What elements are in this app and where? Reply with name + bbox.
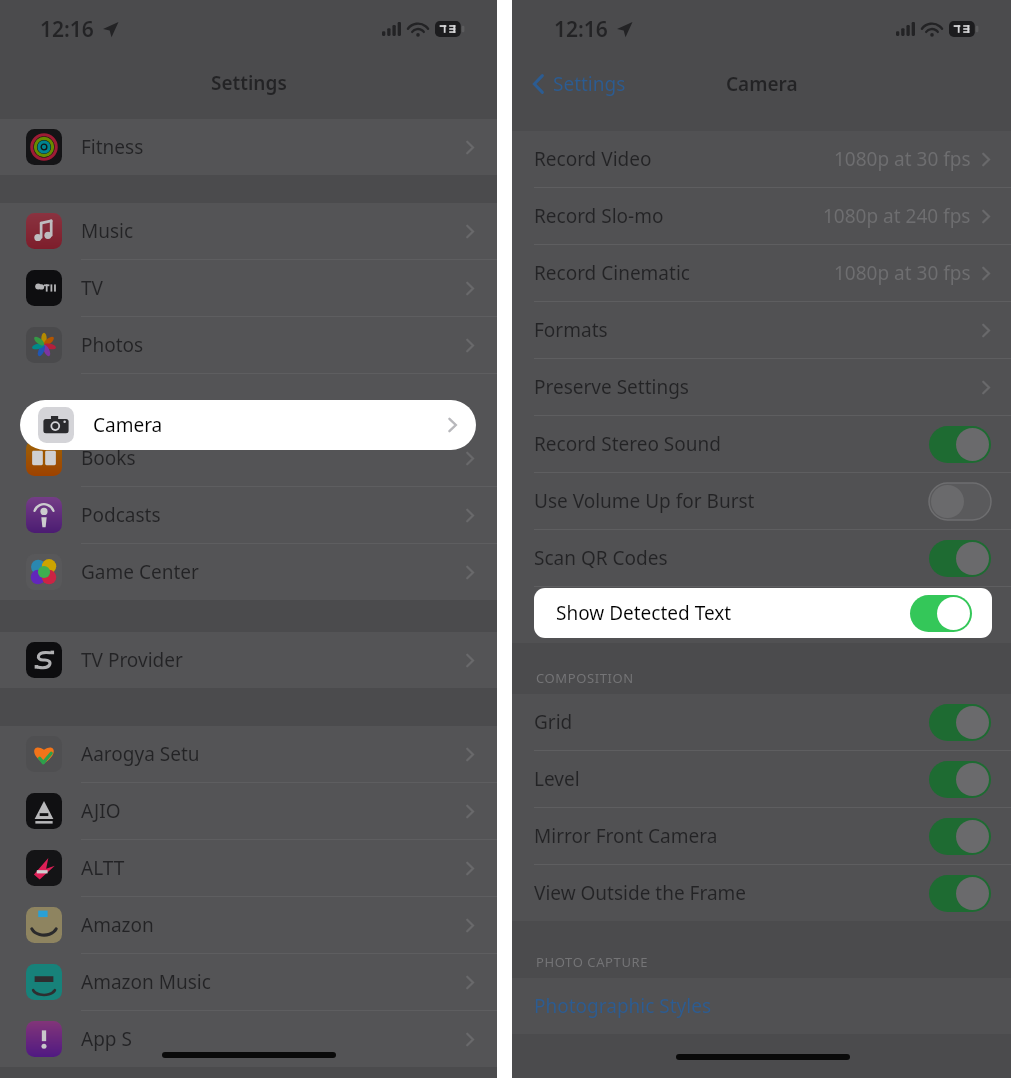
button[interactable]: ALTT <box>0 840 497 897</box>
button[interactable]: Books <box>0 430 497 487</box>
button[interactable]: View Outside the Frame <box>512 865 1011 921</box>
button[interactable]: Grid <box>512 694 1011 751</box>
button[interactable]: Aarogya Setu <box>0 726 497 783</box>
button[interactable]: Scan QR Codes <box>512 530 1011 587</box>
staticText: Aarogya Setu <box>81 741 200 767</box>
staticText: 1080p at 240 fps <box>823 203 971 229</box>
staticText: Scan QR Codes <box>534 545 668 571</box>
staticText: Record Video <box>534 146 652 172</box>
button[interactable]: Show Detected Text <box>534 588 992 638</box>
button[interactable]: Record Stereo Sound <box>512 416 1011 473</box>
other: Record Stereo Sound toggle <box>929 426 991 463</box>
button[interactable]: Camera <box>20 400 476 450</box>
staticText: Formats <box>534 317 608 343</box>
staticText: ALTT <box>81 855 125 881</box>
button[interactable]: Formats <box>512 302 1011 359</box>
button[interactable]: Record Cinematic <box>512 245 1011 302</box>
staticText: Record Cinematic <box>534 260 690 286</box>
other: Use Volume Up for Burst toggle <box>929 483 991 520</box>
staticText: Settings <box>553 71 626 97</box>
other: Level toggle <box>929 761 991 798</box>
staticText: App S <box>81 1026 132 1052</box>
staticText: Use Volume Up for Burst <box>534 488 755 514</box>
staticText: Books <box>81 445 136 471</box>
staticText: Preserve Settings <box>534 374 689 400</box>
staticText: 12:16 <box>554 15 608 44</box>
button[interactable]: TV Provider <box>0 632 497 688</box>
staticText: Settings <box>211 70 287 96</box>
staticText: TV <box>81 275 103 301</box>
staticText: Record Stereo Sound <box>534 431 721 457</box>
button[interactable]: Mirror Front Camera <box>512 808 1011 865</box>
staticText: Mirror Front Camera <box>534 823 718 849</box>
staticText: Game Center <box>81 559 199 585</box>
staticText: Level <box>534 766 580 792</box>
other: View Outside the Frame toggle <box>929 875 991 912</box>
staticText: PHOTO CAPTURE <box>536 953 648 971</box>
staticText: Camera <box>93 412 163 438</box>
staticText: COMPOSITION <box>536 669 634 687</box>
staticText: Music <box>81 218 134 244</box>
button[interactable]: AJIO <box>0 783 497 840</box>
staticText: Photographic Styles <box>534 993 711 1019</box>
button[interactable]: Preserve Settings <box>512 359 1011 416</box>
button[interactable]: App S <box>0 1011 497 1067</box>
staticText: TV Provider <box>81 647 183 673</box>
staticText: Grid <box>534 709 573 735</box>
staticText: 1080p at 30 fps <box>834 146 971 172</box>
button[interactable]: TV <box>0 260 497 317</box>
staticText: Record Slo-mo <box>534 203 664 229</box>
staticText: Amazon <box>81 912 154 938</box>
button[interactable]: Fitness <box>0 119 497 175</box>
button[interactable]: Photographic Styles <box>512 978 1011 1034</box>
button[interactable]: Record Video <box>512 131 1011 188</box>
button[interactable]: Amazon <box>0 897 497 954</box>
button[interactable]: Record Slo-mo <box>512 188 1011 245</box>
button[interactable]: Amazon Music <box>0 954 497 1011</box>
button[interactable]: Level <box>512 751 1011 808</box>
button[interactable]: Game Center <box>0 544 497 600</box>
other: Mirror Front Camera toggle <box>929 818 991 855</box>
other: Scan QR Codes toggle <box>929 540 991 577</box>
button[interactable]: Show Detected Text toggle, on <box>910 595 972 632</box>
button[interactable]: Use Volume Up for Burst <box>512 473 1011 530</box>
staticText: Podcasts <box>81 502 161 528</box>
button[interactable]: Podcasts <box>0 487 497 544</box>
other: Grid toggle <box>929 704 991 741</box>
button[interactable]: Photos <box>0 317 497 374</box>
staticText: Photos <box>81 332 144 358</box>
staticText: AJIO <box>81 798 121 824</box>
staticText: 1080p at 30 fps <box>834 260 971 286</box>
staticText: View Outside the Frame <box>534 880 747 906</box>
staticText: Show Detected Text <box>556 600 732 626</box>
staticText: Fitness <box>81 134 144 160</box>
button[interactable]: Music <box>0 203 497 260</box>
button[interactable]: Settings <box>526 65 632 103</box>
staticText: 12:16 <box>40 15 94 44</box>
staticText: Amazon Music <box>81 969 211 995</box>
staticText: Camera <box>726 71 798 97</box>
